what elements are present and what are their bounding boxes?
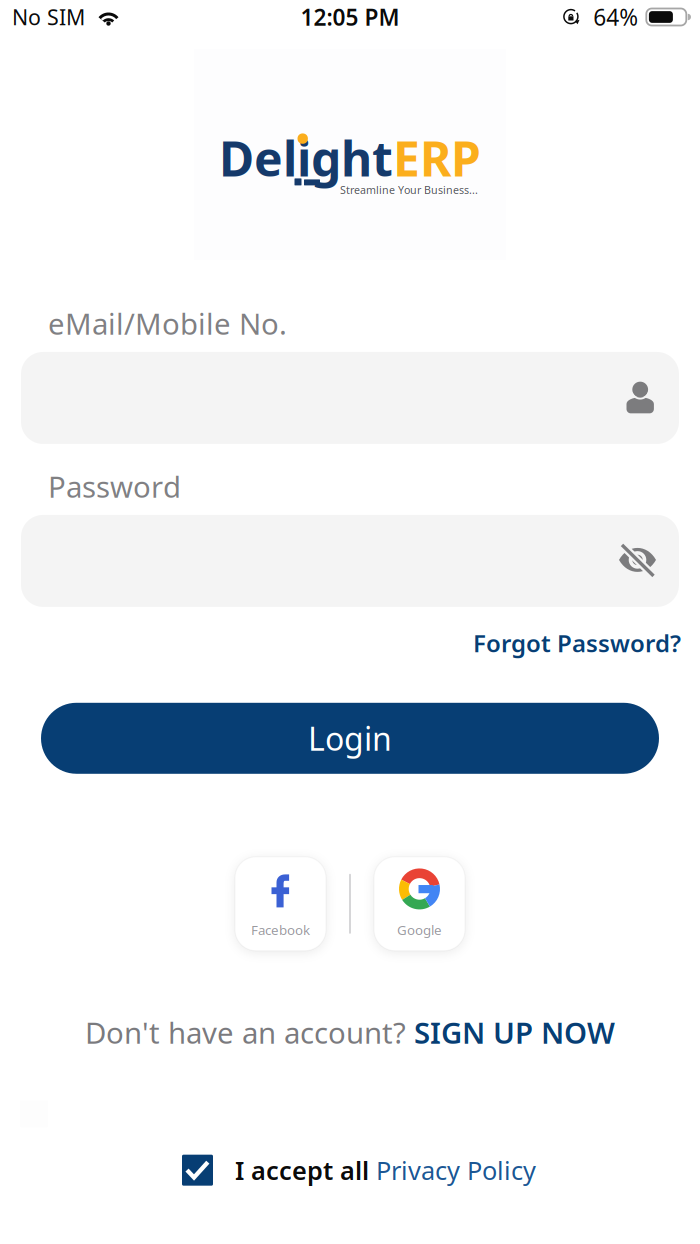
- staticText: Delight: [219, 126, 393, 190]
- button[interactable]: Privacy Policy: [376, 1153, 536, 1187]
- staticText: Google: [397, 921, 442, 939]
- button[interactable]: Google: [374, 857, 465, 951]
- staticText: Login: [308, 717, 392, 759]
- staticText: ERP: [393, 126, 481, 190]
- button[interactable]: Facebook: [235, 857, 326, 951]
- button[interactable]: SIGN UP NOW: [414, 1013, 615, 1052]
- staticText: No SIM: [12, 3, 85, 31]
- staticText: I accept all: [235, 1153, 376, 1187]
- staticText: 12:05 PM: [300, 2, 399, 32]
- staticText: SIGN UP NOW: [414, 1013, 615, 1052]
- staticText: eMail/Mobile No.: [48, 304, 287, 343]
- staticText: 64%: [593, 2, 638, 32]
- button[interactable]: Forgot Password?: [473, 627, 681, 659]
- staticText: Streamline Your Business...: [340, 183, 478, 197]
- button[interactable]: Login: [41, 703, 659, 774]
- button[interactable]: Accept privacy policy: [182, 1155, 213, 1186]
- staticText: Facebook: [251, 921, 310, 939]
- staticText: Don't have an account?: [85, 1013, 414, 1052]
- staticText: Password: [48, 467, 181, 506]
- staticText: Forgot Password?: [473, 627, 681, 659]
- staticText: Privacy Policy: [376, 1153, 536, 1187]
